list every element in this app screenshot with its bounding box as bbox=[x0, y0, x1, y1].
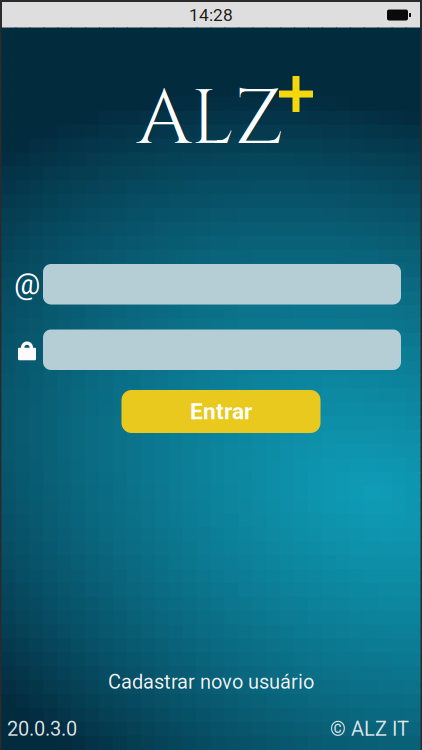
staticText: 20.0.3.0 bbox=[7, 717, 77, 741]
staticText: ALZ bbox=[137, 69, 283, 171]
button[interactable]: Cadastrar novo usuário bbox=[108, 669, 314, 695]
staticText: © ALZ IT bbox=[330, 717, 409, 741]
staticText: Cadastrar novo usuário bbox=[108, 670, 314, 694]
staticText: Entrar bbox=[190, 398, 252, 425]
staticText: @ bbox=[14, 267, 40, 301]
button[interactable]: Entrar bbox=[121, 390, 320, 433]
staticText: 14:28 bbox=[189, 5, 233, 25]
